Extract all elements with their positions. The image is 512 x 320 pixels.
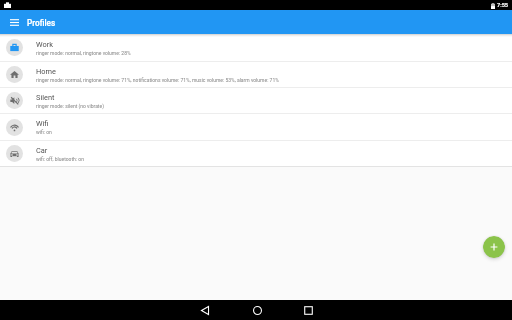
staticText: Home [36, 67, 56, 76]
button[interactable]: Car [0, 141, 512, 166]
button[interactable]: Home [0, 62, 512, 87]
button[interactable]: Home [247, 300, 267, 320]
staticText: Car [36, 146, 48, 155]
staticText: ringer mode: normal, ringtone volume: 28… [36, 50, 131, 56]
staticText: Wifi [36, 119, 49, 128]
staticText: Profiles [27, 18, 56, 28]
button[interactable]: Silent [0, 88, 512, 113]
staticText: ringer mode: normal, ringtone volume: 71… [36, 77, 279, 83]
button[interactable]: Wifi [0, 114, 512, 140]
button[interactable]: Add profile [483, 236, 505, 258]
button[interactable]: Work [0, 34, 512, 61]
button[interactable]: Recent apps [298, 300, 318, 320]
button[interactable]: Open navigation drawer [6, 14, 22, 30]
staticText: ringer mode: silent (no vibrate) [36, 103, 104, 109]
staticText: wifi: off, bluetooth: on [36, 156, 84, 162]
button[interactable]: Back [195, 300, 215, 320]
staticText: wifi: on [36, 129, 52, 135]
staticText: 7:55 [497, 2, 509, 9]
staticText: Work [36, 40, 53, 49]
staticText: Silent [36, 93, 55, 102]
